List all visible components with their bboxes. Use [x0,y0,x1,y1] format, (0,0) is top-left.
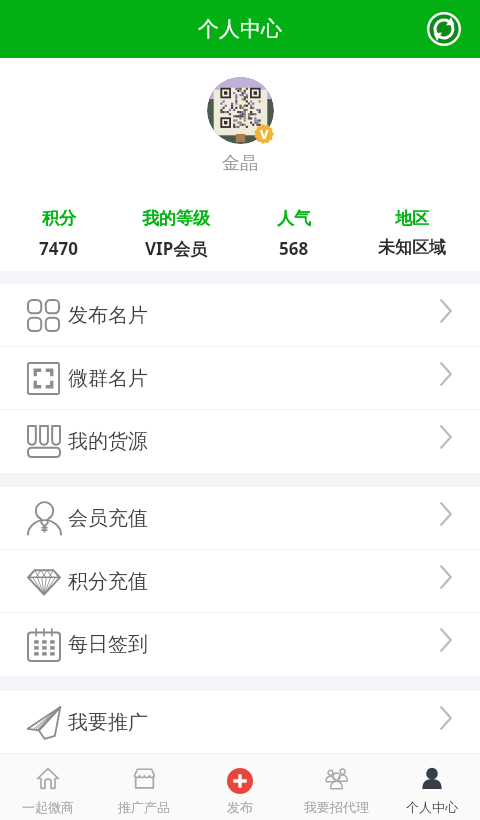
staticText: 一起微商 [22,799,74,815]
button[interactable]: 发布 [192,754,288,815]
button[interactable]: 个人中心 [384,754,480,815]
staticText: 地区 [395,208,429,229]
staticText: 个人中心 [198,16,282,42]
staticText: 我的等级 [142,208,210,229]
staticText: 未知区域 [378,237,446,258]
button[interactable]: 地区 [353,175,471,258]
staticText: 568 [279,237,309,260]
staticText: 推广产品 [118,799,170,815]
button[interactable]: Refresh [422,7,466,51]
staticText: 积分 [42,208,76,229]
button[interactable]: 我的等级 [117,175,235,260]
staticText: 我的货源 [68,429,148,454]
staticText: 7470 [39,237,78,260]
staticText: 积分充值 [68,569,148,594]
staticText: 我要招代理 [304,799,369,815]
staticText: 金晶 [222,152,258,175]
staticText: 我要推广 [68,710,148,735]
button[interactable]: 我的货源 [0,410,480,473]
staticText: 会员充值 [68,506,148,531]
button[interactable]: 人气 [235,175,353,260]
button[interactable]: 积分充值 [0,550,480,613]
button[interactable]: 每日签到 [0,613,480,676]
staticText: 每日签到 [68,632,148,657]
staticText: 发布名片 [68,303,148,328]
button[interactable]: V [207,77,274,144]
button[interactable]: 我要招代理 [288,754,384,815]
button[interactable]: 一起微商 [0,754,96,815]
staticText: 个人中心 [406,799,458,815]
staticText: VIP会员 [145,237,208,260]
button[interactable]: 发布名片 [0,284,480,347]
staticText: 发布 [227,799,253,815]
button[interactable]: 推广产品 [96,754,192,815]
button[interactable]: 会员充值 [0,487,480,550]
button[interactable]: 我要推广 [0,691,480,754]
staticText: V [260,125,269,143]
button[interactable]: 微群名片 [0,347,480,410]
staticText: 微群名片 [68,366,148,391]
staticText: 人气 [277,208,311,229]
button[interactable]: 积分 [0,175,117,260]
